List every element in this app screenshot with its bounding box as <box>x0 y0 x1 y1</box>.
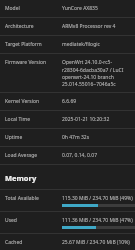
staticText: 6.6.69 <box>62 98 77 105</box>
staticText: 0h 47m 32s <box>62 134 90 141</box>
staticText: 0.07, 0.14, 0.07 <box>62 152 98 159</box>
staticText: Used <box>5 217 62 224</box>
staticText: YunCore AX835 <box>62 5 98 12</box>
staticText: 25.67 MiB / 234.70 MiB (10%) <box>62 239 130 246</box>
staticText: Load Average <box>5 152 62 159</box>
staticText: Memory <box>5 173 37 183</box>
staticText: ARMv8 Processor rev 4 <box>62 23 116 30</box>
staticText: Local Time <box>5 116 62 123</box>
button[interactable]: Firmware Version <box>0 54 135 92</box>
staticText: Uptime <box>5 134 62 141</box>
staticText: mediatek/filogic <box>62 41 100 48</box>
staticText: Target Platform <box>5 41 62 48</box>
button[interactable]: Architecture <box>0 18 135 35</box>
button[interactable]: Kernel Version <box>0 93 135 110</box>
staticText: Total Available <box>5 195 62 202</box>
button[interactable]: Load Average <box>0 147 135 164</box>
button[interactable]: Used <box>0 212 135 233</box>
button[interactable]: Cached <box>0 234 135 250</box>
staticText: Cached <box>5 239 62 246</box>
button[interactable]: Total Available <box>0 190 135 211</box>
button[interactable]: Target Platform <box>0 36 135 53</box>
staticText: 111.36 MiB / 234.70 MiB (47%) <box>62 217 133 224</box>
staticText: 115.30 MiB / 234.70 MiB (49%) <box>62 195 133 202</box>
button[interactable]: Model <box>0 0 135 17</box>
staticText: OpenWrt 24.10.0-rc5-r28304-6dacba30a7 / … <box>62 59 135 87</box>
staticText: Kernel Version <box>5 98 62 105</box>
staticText: Model <box>5 5 62 12</box>
button[interactable]: Local Time <box>0 111 135 128</box>
staticText: 2025-01-21 10:20:32 <box>62 116 110 123</box>
button[interactable]: Uptime <box>0 129 135 146</box>
staticText: Firmware Version <box>5 59 62 66</box>
staticText: Architecture <box>5 23 62 30</box>
